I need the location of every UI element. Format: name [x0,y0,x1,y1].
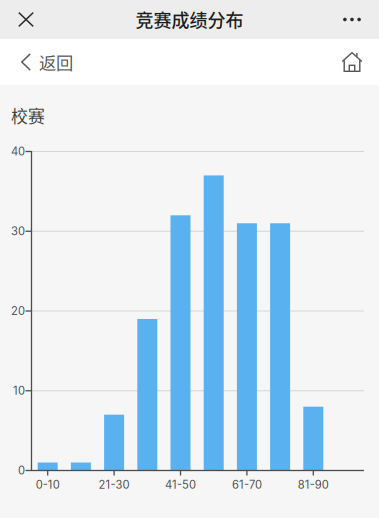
staticText: 返回 [39,49,73,75]
staticText: 0-10 [36,478,60,491]
staticText: 61-70 [232,478,262,491]
button[interactable]: More options [332,0,379,39]
staticText: 校赛 [11,103,45,128]
staticText: 21-30 [99,478,130,491]
button[interactable]: 返回 [0,39,87,85]
staticText: 41-50 [165,478,196,491]
staticText: 30 [11,224,25,238]
staticText: 81-90 [298,478,329,491]
button[interactable]: Close [0,0,45,39]
button[interactable]: Home [331,39,379,85]
staticText: 竞赛成绩分布 [135,6,243,33]
staticText: 0 [18,464,25,477]
staticText: 10 [13,384,25,398]
staticText: 20 [11,304,25,318]
staticText: 40 [11,145,25,158]
